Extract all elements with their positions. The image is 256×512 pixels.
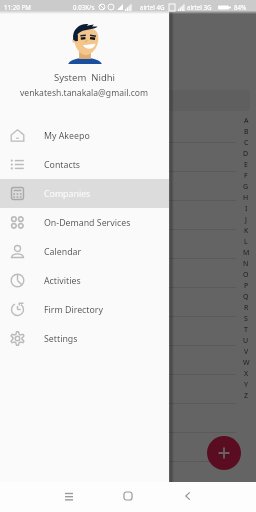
staticText: F [244, 171, 248, 181]
button[interactable]: On-Demand Services [0, 208, 169, 237]
staticText: C [244, 138, 249, 148]
staticText: J [245, 215, 247, 225]
staticText: Firm Directory [44, 304, 103, 316]
staticText: Companies [44, 188, 91, 200]
staticText: G [243, 182, 249, 192]
staticText: Z [244, 391, 249, 401]
button[interactable]: Recents [56, 482, 82, 512]
staticText: X [244, 369, 249, 379]
staticText: airtel 4G [140, 3, 165, 11]
staticText: My Akeepo [44, 130, 90, 142]
staticText: O [243, 270, 249, 280]
staticText: 11:20 PM [4, 3, 31, 11]
staticText: U [243, 336, 249, 346]
staticText: T [244, 325, 248, 335]
button[interactable]: Calendar [0, 237, 169, 266]
staticText: H [243, 193, 249, 203]
staticText: L [244, 237, 248, 247]
staticText: M [243, 248, 250, 258]
staticText: K [244, 226, 249, 236]
staticText: A [244, 116, 249, 126]
staticText: Y [244, 380, 248, 390]
staticText: W [243, 358, 250, 368]
button[interactable]: My Akeepo [0, 121, 169, 150]
staticText: 0.03K/s [73, 3, 95, 11]
staticText: airtel 3G [187, 3, 212, 11]
staticText: Activities [44, 275, 81, 287]
staticText: Contacts [44, 159, 81, 171]
button[interactable]: Settings [0, 324, 169, 353]
staticText: N [243, 259, 249, 269]
staticText: Calendar [44, 246, 82, 258]
staticText: V [244, 347, 249, 357]
staticText: E [244, 160, 248, 170]
button[interactable]: Firm Directory [0, 295, 169, 324]
button[interactable]: Home [115, 482, 141, 512]
staticText: venkatesh.tanakala@gmail.com [20, 87, 149, 99]
staticText: Q [243, 292, 249, 302]
staticText: S [244, 314, 248, 324]
staticText: P [244, 281, 249, 291]
button[interactable]: Back [174, 482, 200, 512]
staticText: I [245, 204, 248, 214]
button[interactable]: Companies [0, 179, 169, 208]
staticText: R [244, 303, 249, 313]
staticText: 84% [234, 3, 247, 11]
staticText: Settings [44, 333, 78, 345]
staticText: D [243, 149, 249, 159]
button[interactable]: Add [207, 436, 241, 470]
staticText: System Nidhi [54, 71, 116, 84]
staticText: B [244, 127, 249, 137]
staticText: On-Demand Services [44, 217, 131, 229]
button[interactable]: Contacts [0, 150, 169, 179]
button[interactable]: Activities [0, 266, 169, 295]
